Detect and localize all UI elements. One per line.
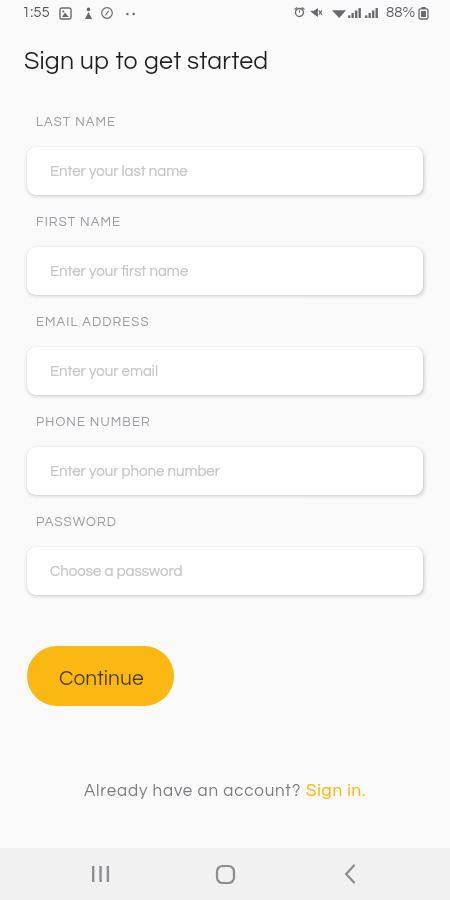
button[interactable]: Enter your email bbox=[27, 347, 423, 395]
staticText: Continue bbox=[59, 668, 144, 690]
staticText: Enter your email bbox=[50, 364, 158, 379]
staticText: Already have an account? bbox=[84, 782, 306, 800]
button[interactable]: Choose a password bbox=[27, 547, 423, 595]
staticText: Enter your phone number bbox=[50, 464, 220, 479]
staticText: 88% bbox=[386, 5, 416, 20]
staticText: 1:55 bbox=[22, 5, 50, 20]
button[interactable]: Continue bbox=[27, 646, 174, 706]
button[interactable]: Enter your last name bbox=[27, 147, 423, 195]
staticText: Choose a password bbox=[50, 564, 183, 579]
staticText: Enter your last name bbox=[50, 164, 188, 179]
staticText: PHONE NUMBER bbox=[36, 415, 151, 428]
staticText: PASSWORD bbox=[36, 515, 117, 528]
button[interactable]: Recent apps bbox=[77, 850, 125, 898]
staticText: Sign up to get started bbox=[24, 48, 269, 74]
button[interactable]: Enter your phone number bbox=[27, 447, 423, 495]
button[interactable]: Sign in. bbox=[306, 782, 367, 800]
staticText: LAST NAME bbox=[36, 115, 117, 128]
staticText: Enter your first name bbox=[50, 264, 189, 279]
button[interactable]: Enter your first name bbox=[27, 247, 423, 295]
staticText: EMAIL ADDRESS bbox=[36, 315, 150, 328]
button[interactable]: Back bbox=[326, 850, 374, 898]
staticText: FIRST NAME bbox=[36, 215, 121, 228]
button[interactable]: Home bbox=[201, 850, 249, 898]
